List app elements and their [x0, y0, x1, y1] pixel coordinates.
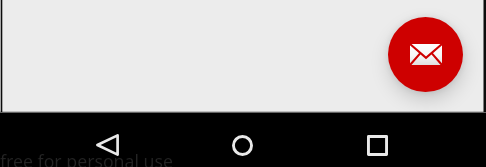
- button[interactable]: Compose email: [388, 17, 463, 92]
- button[interactable]: Home: [226, 129, 258, 161]
- button[interactable]: Back: [91, 129, 124, 160]
- staticText: free for personal use: [0, 149, 174, 167]
- button[interactable]: Recent apps: [361, 129, 393, 161]
